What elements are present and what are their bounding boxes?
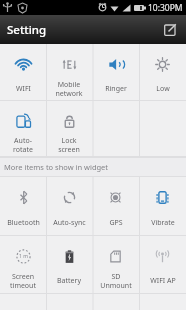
button[interactable] <box>157 16 184 43</box>
staticText: Battery <box>57 276 81 286</box>
button[interactable]: Mobile network <box>46 44 92 101</box>
button[interactable]: WIFI <box>0 44 46 101</box>
button[interactable]: Ringer <box>92 44 139 101</box>
button[interactable]: Vibrate <box>139 177 186 236</box>
staticText: 10:30PM <box>148 2 183 14</box>
staticText: More items to show in widget <box>4 162 109 172</box>
button[interactable]: 1 m <box>0 236 46 294</box>
button[interactable]: Auto-sync <box>46 177 92 236</box>
staticText: SD Unmount <box>100 272 132 290</box>
button[interactable]: Battery <box>46 236 92 294</box>
button[interactable]: Bluetooth <box>0 177 46 236</box>
staticText: Vibrate <box>151 218 175 228</box>
staticText: Auto- rotate <box>13 136 33 154</box>
staticText: GPS <box>109 218 123 228</box>
staticText: WIFI AP <box>150 276 176 286</box>
staticText: Ringer <box>105 84 127 94</box>
button[interactable]: Lock screen <box>46 101 92 157</box>
button[interactable]: Auto- rotate <box>0 101 46 157</box>
staticText: Low <box>156 84 170 94</box>
staticText: Lock screen <box>58 136 80 154</box>
button[interactable]: GPS <box>92 177 139 236</box>
staticText: Auto-sync <box>53 218 86 228</box>
staticText: Screen timeout <box>10 272 36 290</box>
staticText: Mobile network <box>55 80 83 98</box>
button[interactable]: WIFI AP <box>139 236 186 294</box>
staticText: Bluetooth <box>7 218 40 228</box>
staticText: Setting <box>7 22 47 38</box>
staticText: 1 m <box>19 253 28 260</box>
button[interactable]: SD Unmount <box>92 236 139 294</box>
staticText: WIFI <box>16 84 31 94</box>
button[interactable]: Low <box>139 44 186 101</box>
